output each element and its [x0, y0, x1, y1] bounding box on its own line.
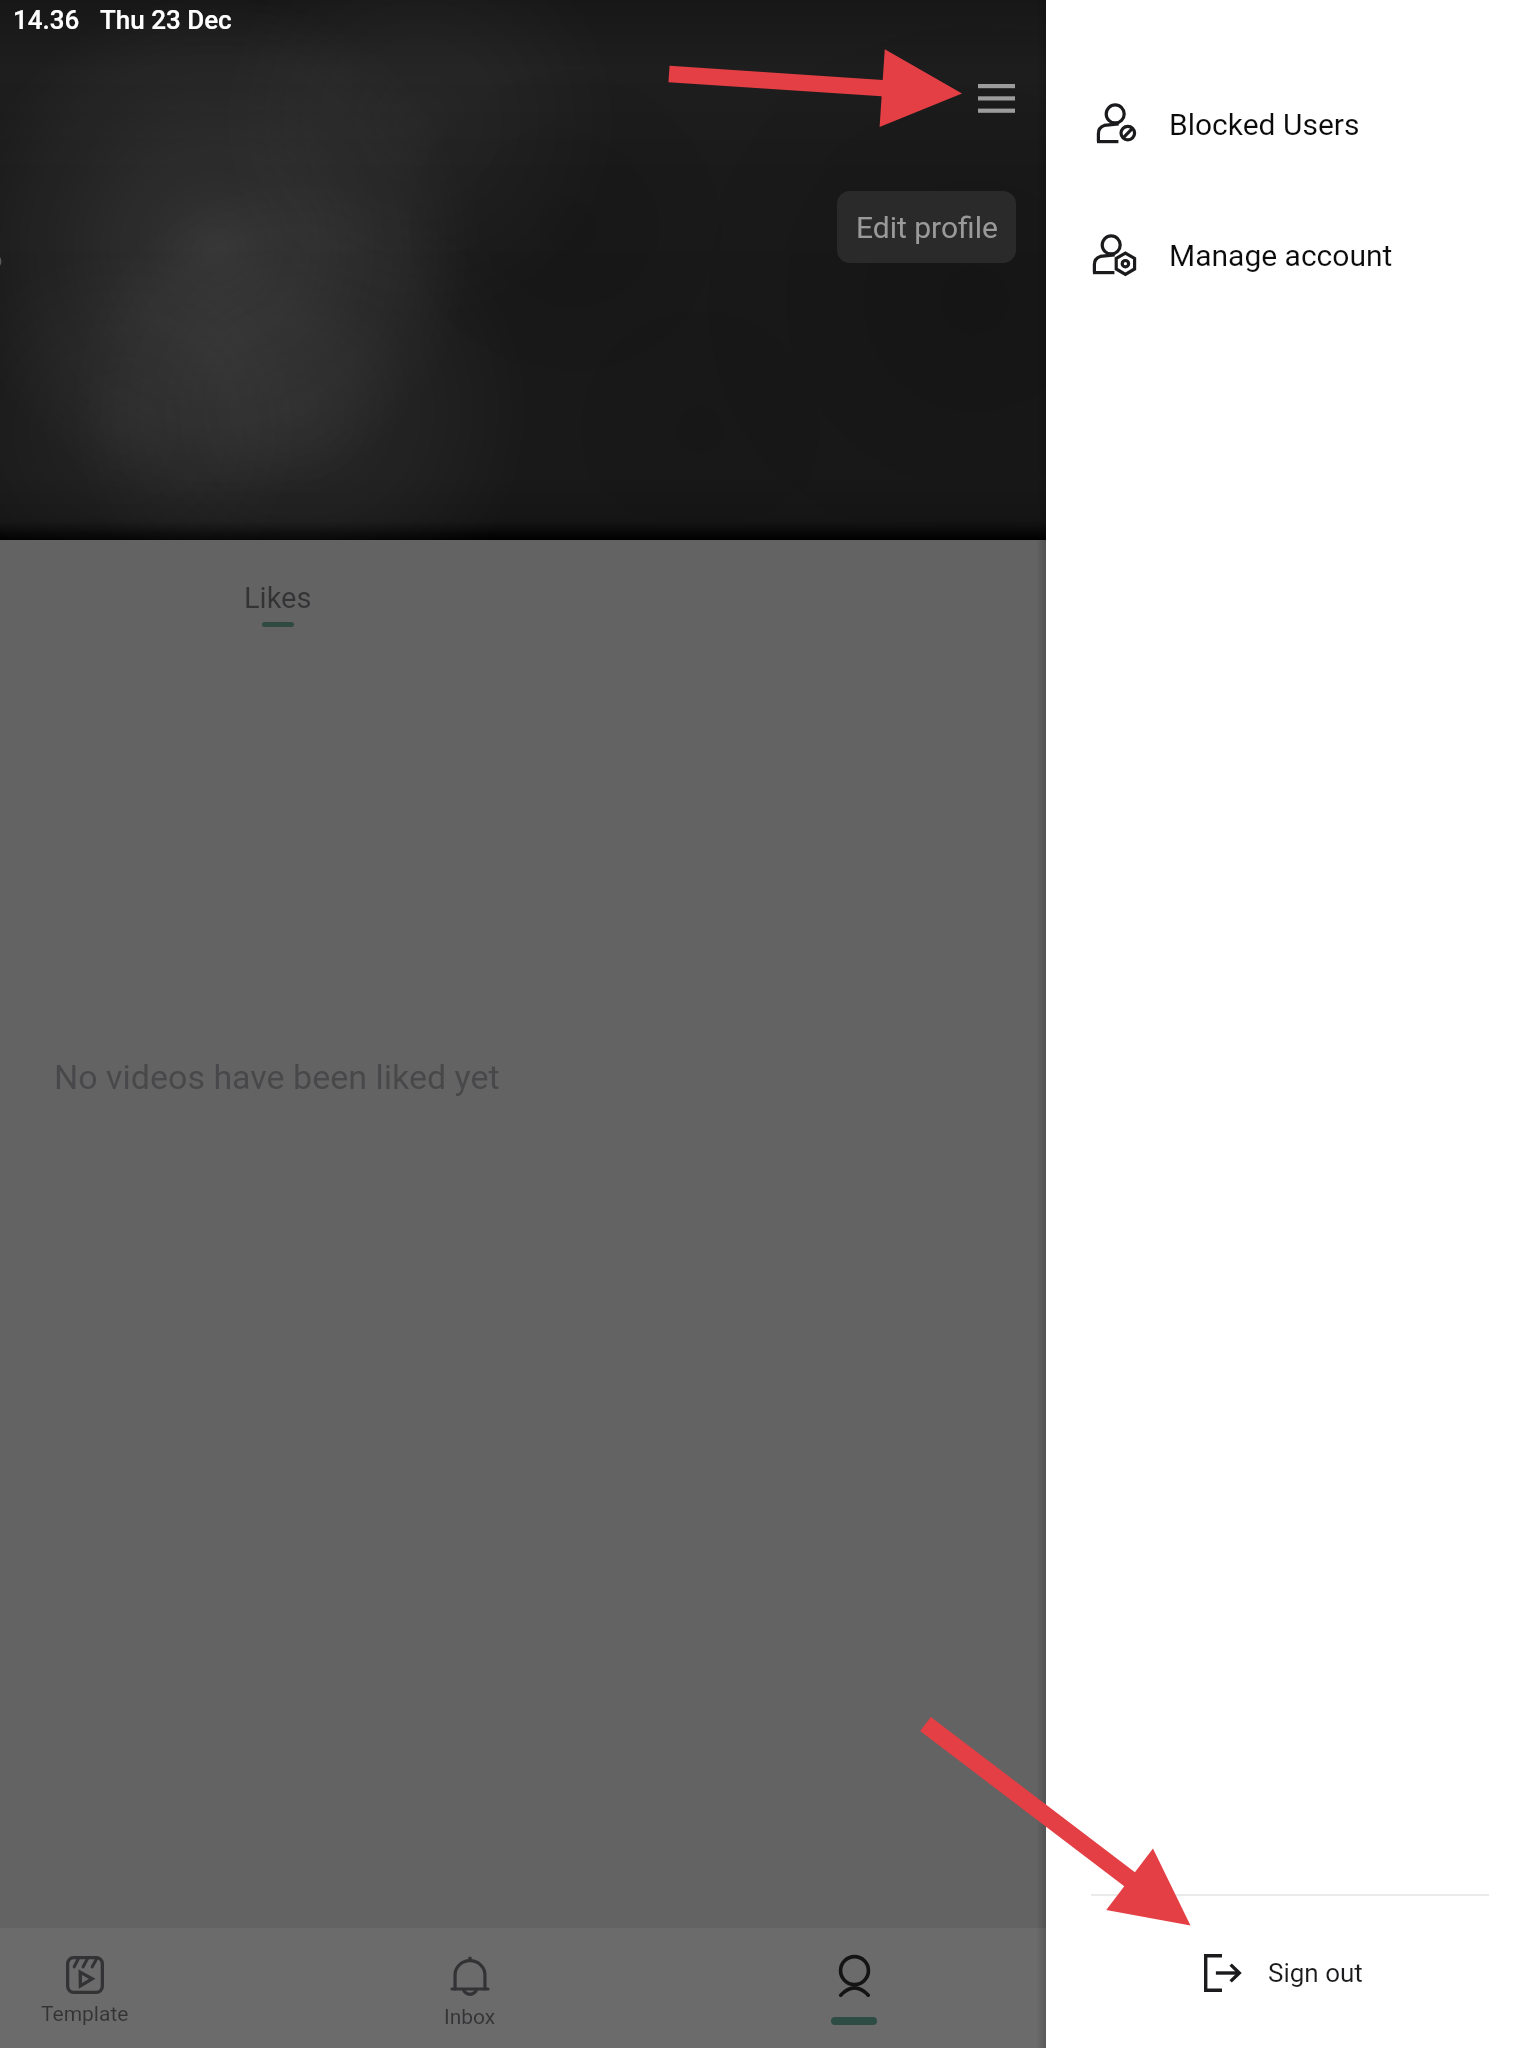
staticText: Inbox: [444, 2005, 496, 2030]
staticText: Template: [41, 2002, 129, 2027]
staticText: Manage account: [1169, 238, 1393, 273]
staticText: 6: [0, 242, 3, 275]
staticText: 14.36: [13, 5, 80, 35]
button[interactable]: Edit profile: [837, 191, 1016, 263]
button[interactable]: Profile: [774, 1928, 934, 2048]
button[interactable]: Likes: [214, 581, 342, 661]
button[interactable]: Manage account: [1046, 220, 1536, 290]
staticText: Sign out: [1268, 1958, 1363, 1988]
button[interactable]: Blocked Users: [1046, 89, 1536, 159]
button[interactable]: Template: [5, 1928, 165, 2048]
staticText: Thu 23 Dec: [100, 5, 232, 35]
button[interactable]: Sign out: [1046, 1937, 1536, 2009]
button[interactable]: Open menu: [958, 58, 1034, 138]
staticText: Likes: [244, 581, 312, 615]
staticText: Blocked Users: [1169, 107, 1360, 142]
staticText: Edit profile: [856, 210, 998, 245]
button[interactable]: Inbox: [390, 1928, 550, 2048]
staticText: No videos have been liked yet: [54, 1057, 500, 1097]
